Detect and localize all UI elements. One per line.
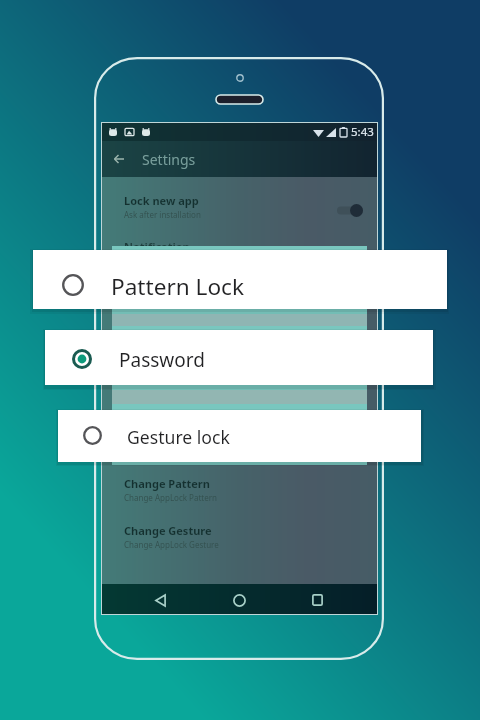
staticText: Notification bbox=[124, 239, 190, 254]
button[interactable]: Password bbox=[45, 330, 433, 385]
staticText: Gesture lock bbox=[127, 425, 230, 449]
button[interactable]: Pattern Lock bbox=[33, 250, 447, 309]
staticText: Change AppLock Gesture bbox=[124, 539, 219, 550]
staticText: Change Gesture bbox=[124, 523, 212, 538]
staticText: Lock new app bbox=[124, 193, 199, 208]
staticText: Change Pattern bbox=[124, 476, 210, 491]
other: Back bbox=[155, 594, 166, 607]
staticText: Settings bbox=[142, 150, 196, 169]
staticText: Pattern Lock bbox=[111, 271, 244, 302]
button[interactable]: Gesture lock bbox=[58, 410, 421, 462]
staticText: Password bbox=[119, 347, 205, 373]
staticText: Change AppLock Pattern bbox=[124, 492, 217, 503]
other: Home bbox=[233, 594, 246, 607]
other: Back bbox=[114, 154, 124, 164]
staticText: Ask after installation bbox=[124, 209, 201, 220]
other: Recents bbox=[312, 594, 323, 606]
staticText: 5:43 bbox=[351, 124, 374, 140]
